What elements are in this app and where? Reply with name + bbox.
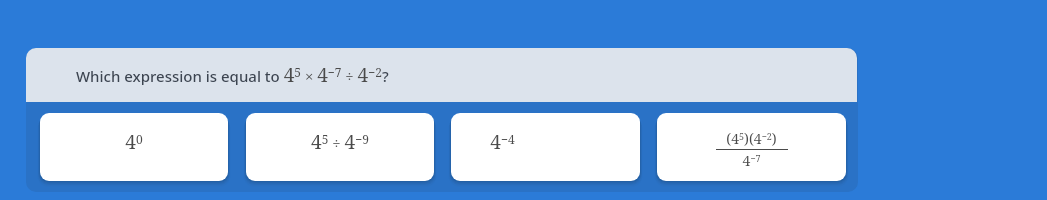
button[interactable]: (45)(4−2) [657, 113, 846, 181]
staticText: 40 [40, 129, 228, 155]
staticText: 4−4 [451, 129, 597, 155]
staticText: (45)(4−2) [726, 129, 777, 148]
staticText: 45 ÷ 4−9 [246, 129, 434, 155]
staticText: Which expression is equal to 45 × 4−7 ÷ … [76, 62, 389, 88]
button[interactable]: 4−4 [451, 113, 640, 181]
button[interactable]: 45 ÷ 4−9 [246, 113, 434, 181]
button[interactable]: 40 [40, 113, 228, 181]
staticText: 4−7 [742, 151, 761, 170]
